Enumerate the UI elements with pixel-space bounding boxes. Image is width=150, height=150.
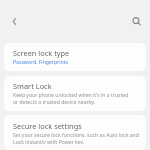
staticText: Lock instantly with Power key. [13,139,85,144]
button[interactable]: Screen lock type [4,43,146,71]
staticText: Password, Fingerprints [13,59,68,66]
staticText: Keep your phone unlocked when it's in a … [13,92,139,99]
staticText: Screen lock type [13,48,70,58]
staticText: Secure lock settings [13,121,82,131]
staticText: or detects a trusted device nearby. [13,99,96,106]
button[interactable]: Back [6,13,23,30]
button[interactable]: Secure lock settings [4,115,146,150]
button[interactable]: Smart Lock [4,76,146,111]
staticText: Set your secure lock functions, such as … [13,132,139,139]
staticText: Smart Lock [13,81,52,91]
button[interactable]: Search [128,13,145,30]
